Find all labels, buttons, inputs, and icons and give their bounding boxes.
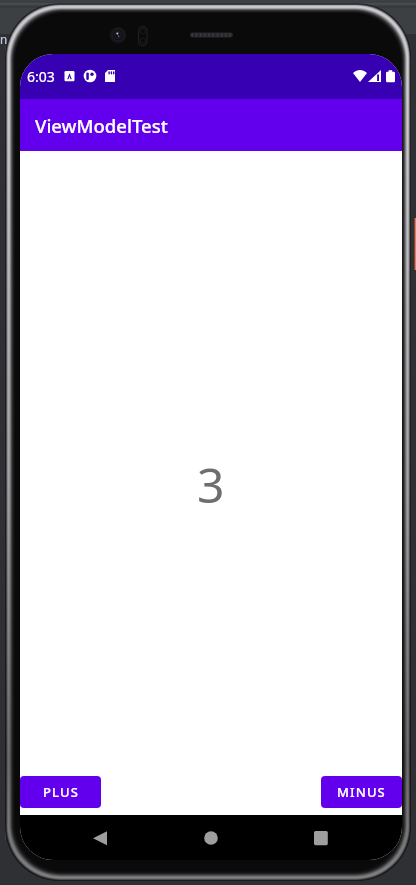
button[interactable]: Back	[78, 816, 122, 860]
button[interactable]: Recents	[299, 816, 343, 860]
staticText: n	[0, 31, 8, 47]
staticText: PLUS	[43, 783, 79, 801]
staticText: 3	[197, 452, 225, 517]
button[interactable]: MINUS	[321, 776, 402, 808]
button[interactable]: Home	[189, 816, 233, 860]
button[interactable]: PLUS	[20, 776, 101, 808]
staticText: ViewModelTest	[35, 113, 168, 138]
staticText: 6:03	[27, 67, 55, 86]
staticText: MINUS	[337, 783, 386, 801]
